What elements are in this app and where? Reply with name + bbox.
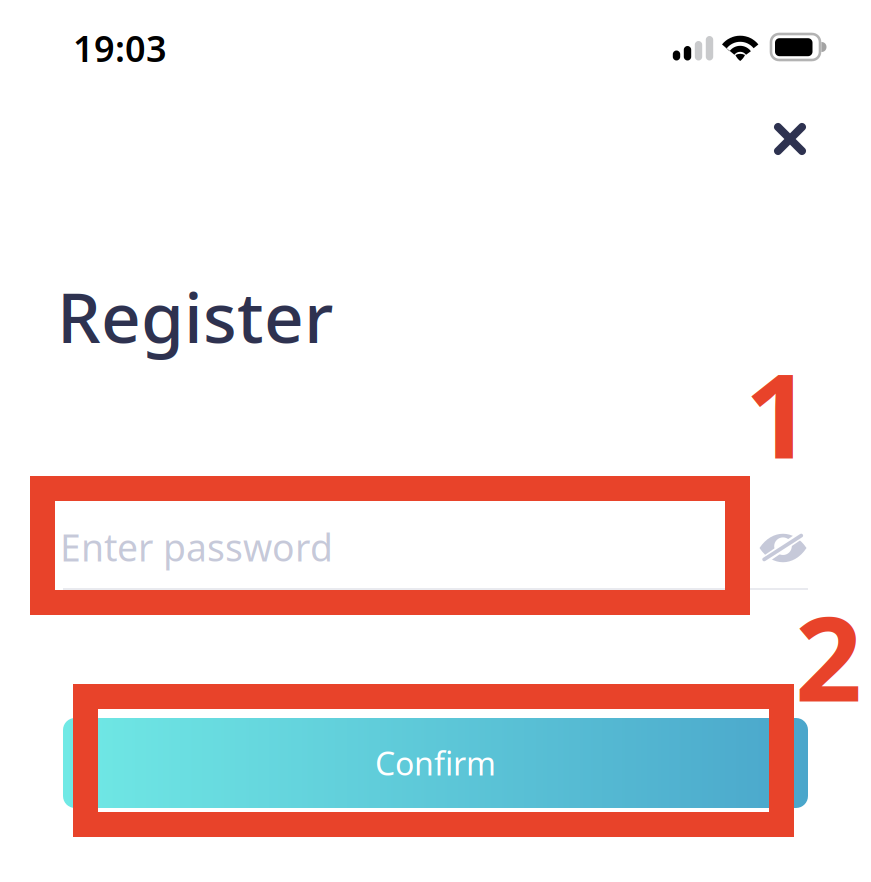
staticText: Enter password <box>60 522 333 572</box>
button[interactable]: Confirm <box>63 718 808 808</box>
staticText: 2 <box>795 578 862 734</box>
staticText: Confirm <box>375 742 496 784</box>
button[interactable]: Show password <box>759 533 807 563</box>
button[interactable]: Close <box>742 99 838 179</box>
staticText: 1 <box>744 335 811 491</box>
staticText: Register <box>57 270 333 362</box>
button[interactable]: Enter password <box>63 514 743 588</box>
staticText: 19:03 <box>73 24 167 72</box>
